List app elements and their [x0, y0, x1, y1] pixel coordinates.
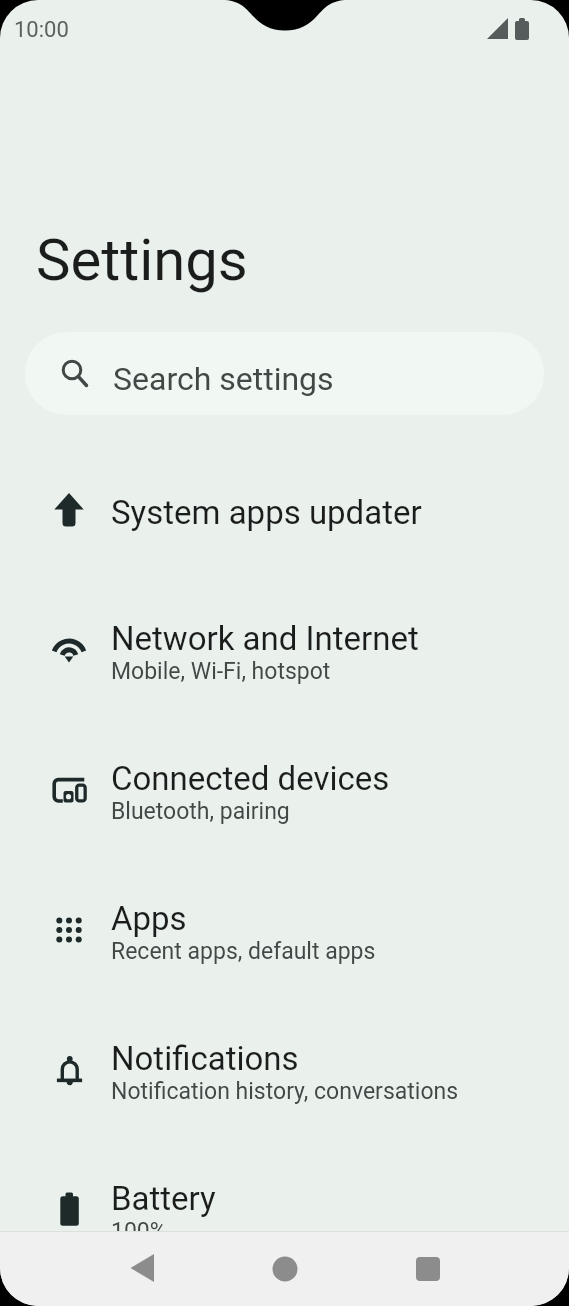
button[interactable] — [404, 1245, 452, 1293]
staticText: Apps — [111, 899, 187, 938]
staticText: Network and Internet — [111, 619, 419, 658]
button[interactable]: Connected devices — [0, 720, 569, 860]
button[interactable]: Apps — [0, 860, 569, 1000]
button[interactable]: Battery — [0, 1140, 569, 1280]
staticText: Bluetooth, pairing — [111, 798, 290, 825]
button[interactable]: System apps updater — [0, 440, 569, 580]
staticText: 100% — [111, 1218, 167, 1245]
staticText: Battery — [111, 1179, 216, 1218]
staticText: Mobile, Wi-Fi, hotspot — [111, 658, 331, 685]
staticText: Notifications — [111, 1039, 299, 1078]
staticText: Notification history, conversations — [111, 1078, 459, 1105]
button[interactable]: Notifications — [0, 1000, 569, 1140]
button[interactable] — [261, 1245, 309, 1293]
staticText: Settings — [36, 226, 248, 294]
staticText: 10:00 — [14, 17, 69, 43]
staticText: Connected devices — [111, 759, 390, 798]
button[interactable] — [119, 1245, 167, 1293]
button[interactable]: Search settings — [25, 332, 544, 415]
staticText: Search settings — [113, 360, 334, 398]
staticText: Recent apps, default apps — [111, 938, 376, 965]
button[interactable]: Network and Internet — [0, 580, 569, 720]
staticText: System apps updater — [111, 493, 422, 532]
